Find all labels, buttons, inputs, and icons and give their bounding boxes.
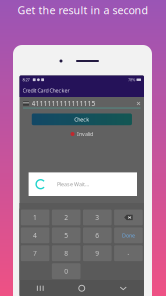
button[interactable]: 8 (51, 244, 82, 262)
staticText: 1 (33, 213, 37, 222)
staticText: Invalid (77, 130, 93, 138)
staticText: 6 (95, 231, 99, 240)
staticText: - (127, 249, 129, 258)
button[interactable]: Recents (19, 280, 61, 296)
button[interactable]: 5 (51, 226, 82, 244)
staticText: 2 (64, 213, 68, 222)
button[interactable]: 9 (82, 244, 113, 262)
button[interactable]: 7 (19, 244, 51, 262)
button[interactable]: - (113, 244, 144, 262)
staticText: Done (122, 232, 135, 239)
staticText: Check (74, 116, 89, 123)
staticText: 3 (95, 213, 99, 222)
staticText: 8 (64, 249, 68, 258)
staticText: Get the result in a second (17, 3, 148, 17)
staticText: 9 (95, 249, 99, 258)
button[interactable] (113, 208, 144, 226)
button[interactable]: 6 (82, 226, 113, 244)
staticText: 78% (128, 77, 135, 82)
button[interactable]: 3 (82, 208, 113, 226)
staticText: Please Wait… (57, 181, 89, 188)
button[interactable]: 2 (51, 208, 82, 226)
button[interactable]: Check (32, 113, 132, 125)
button[interactable]: Back (102, 280, 144, 296)
button[interactable]: Home (61, 280, 102, 296)
staticText: 7 (33, 249, 37, 258)
button[interactable]: Done (113, 226, 144, 244)
staticText: 8:27 (22, 77, 29, 82)
button[interactable]: 4 (19, 226, 51, 244)
staticText: 4111111111111115 (31, 99, 95, 108)
staticText: 0 (64, 267, 68, 276)
staticText: Credit Card Checker (22, 87, 69, 94)
staticText: 5 (64, 231, 68, 240)
button[interactable]: 1 (19, 208, 51, 226)
button[interactable]: 0 (51, 262, 82, 280)
staticText: 4 (33, 231, 37, 240)
